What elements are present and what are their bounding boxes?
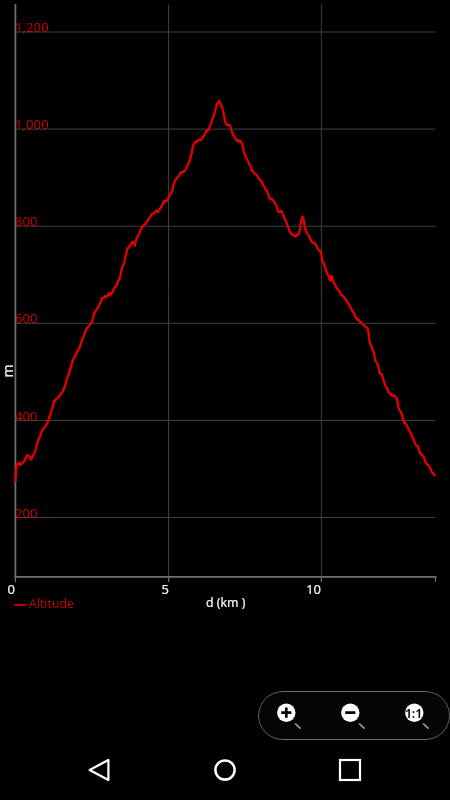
staticText: 200 [15, 504, 38, 522]
staticText: 1:1 [405, 705, 423, 721]
staticText: 0 [0, 580, 15, 598]
button[interactable]: Reset zoom to 1:1 [386, 691, 450, 740]
button[interactable]: Back [79, 750, 119, 790]
button[interactable]: Zoom out [322, 691, 386, 740]
staticText: 5 [125, 580, 169, 598]
staticText: d (km ) [206, 594, 246, 611]
button[interactable]: Home [205, 750, 245, 790]
staticText: Altitude [29, 595, 74, 612]
staticText: 600 [15, 309, 38, 327]
staticText: m [0, 363, 16, 377]
staticText: 10 [277, 580, 321, 598]
button[interactable]: Recent apps [330, 750, 370, 790]
staticText: 800 [15, 212, 38, 230]
staticText: 1,000 [15, 115, 49, 133]
button[interactable]: Altitude [10, 594, 78, 612]
button[interactable]: Zoom in [258, 691, 322, 740]
staticText: 1,200 [15, 18, 49, 36]
staticText: 400 [15, 407, 38, 425]
